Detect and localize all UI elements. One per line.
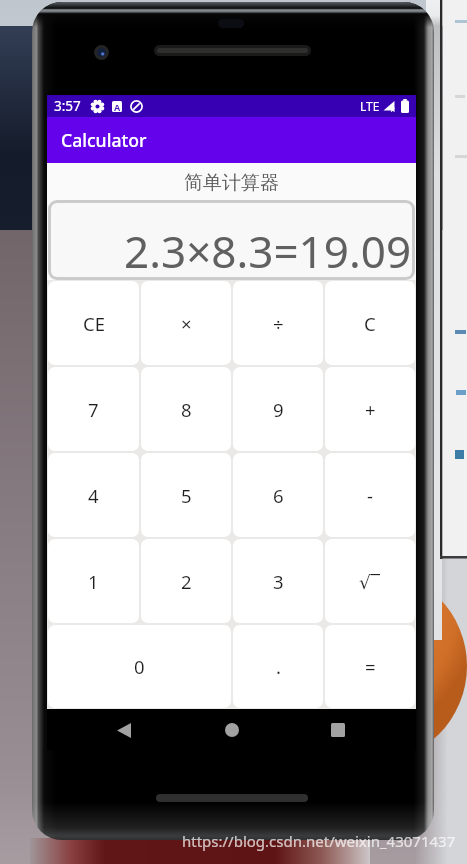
staticText: 8 bbox=[181, 397, 192, 422]
button[interactable]: 7 bbox=[48, 367, 139, 451]
staticText: 9 bbox=[273, 397, 284, 422]
staticText: = bbox=[365, 654, 376, 679]
staticText: × bbox=[181, 311, 192, 336]
staticText: - bbox=[367, 483, 373, 508]
staticText: A bbox=[114, 101, 121, 112]
button[interactable]: 2 bbox=[141, 539, 231, 623]
staticText: √‾ bbox=[359, 569, 381, 594]
staticText: 7 bbox=[88, 397, 99, 422]
button[interactable]: 4 bbox=[48, 453, 139, 537]
staticText: 1 bbox=[88, 569, 99, 594]
button[interactable]: 9 bbox=[233, 367, 323, 451]
staticText: 0 bbox=[134, 654, 145, 679]
staticText: ÷ bbox=[273, 311, 284, 336]
staticText: 5 bbox=[181, 483, 192, 508]
staticText: LTE bbox=[360, 98, 380, 114]
button[interactable]: C bbox=[325, 281, 415, 365]
button[interactable]: CE bbox=[48, 281, 139, 365]
button[interactable]: + bbox=[325, 367, 415, 451]
button[interactable]: ÷ bbox=[233, 281, 323, 365]
button[interactable]: √‾ bbox=[325, 539, 415, 623]
button[interactable]: 6 bbox=[233, 453, 323, 537]
staticText: 简单计算器 bbox=[47, 171, 416, 195]
button[interactable]: 8 bbox=[141, 367, 231, 451]
staticText: 6 bbox=[273, 483, 284, 508]
staticText: CE bbox=[83, 311, 105, 336]
staticText: + bbox=[365, 397, 376, 422]
button[interactable]: 1 bbox=[48, 539, 139, 623]
button[interactable]: = bbox=[325, 625, 415, 708]
staticText: https://blog.csdn.net/weixin_43071437 bbox=[182, 831, 456, 851]
button[interactable]: - bbox=[325, 453, 415, 537]
button[interactable]: 0 bbox=[48, 625, 231, 708]
button[interactable]: . bbox=[233, 625, 323, 708]
staticText: 3 bbox=[273, 569, 284, 594]
button[interactable]: Calculator bbox=[47, 117, 416, 163]
staticText: 3:57 bbox=[54, 97, 81, 115]
button[interactable]: Back bbox=[109, 715, 139, 745]
staticText: C bbox=[364, 311, 376, 336]
staticText: 2 bbox=[181, 569, 192, 594]
staticText: 4 bbox=[88, 483, 99, 508]
button[interactable]: 5 bbox=[141, 453, 231, 537]
button[interactable]: 3 bbox=[233, 539, 323, 623]
staticText: 2.3×8.3=19.09 bbox=[124, 221, 412, 277]
button[interactable]: × bbox=[141, 281, 231, 365]
button[interactable]: Home bbox=[217, 715, 247, 745]
button[interactable]: Recent apps bbox=[323, 715, 353, 745]
staticText: . bbox=[276, 654, 281, 679]
staticText: Calculator bbox=[61, 128, 147, 152]
